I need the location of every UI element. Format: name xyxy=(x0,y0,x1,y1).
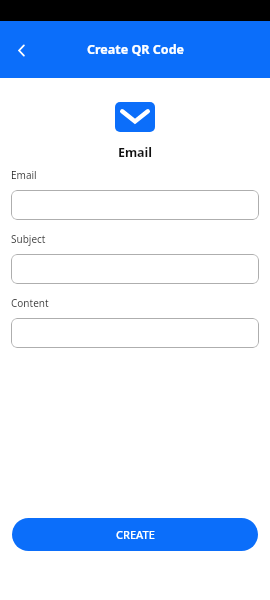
staticText: Create QR Code xyxy=(87,41,184,58)
staticText: Email xyxy=(11,168,37,182)
button[interactable]: Back xyxy=(7,36,35,64)
staticText: CREATE xyxy=(116,527,155,542)
button[interactable] xyxy=(11,190,259,220)
button[interactable] xyxy=(11,254,259,284)
staticText: Subject xyxy=(11,232,46,246)
button[interactable]: CREATE xyxy=(12,518,258,551)
staticText: Email xyxy=(0,144,270,161)
staticText: Content xyxy=(11,296,49,310)
button[interactable] xyxy=(11,318,259,348)
